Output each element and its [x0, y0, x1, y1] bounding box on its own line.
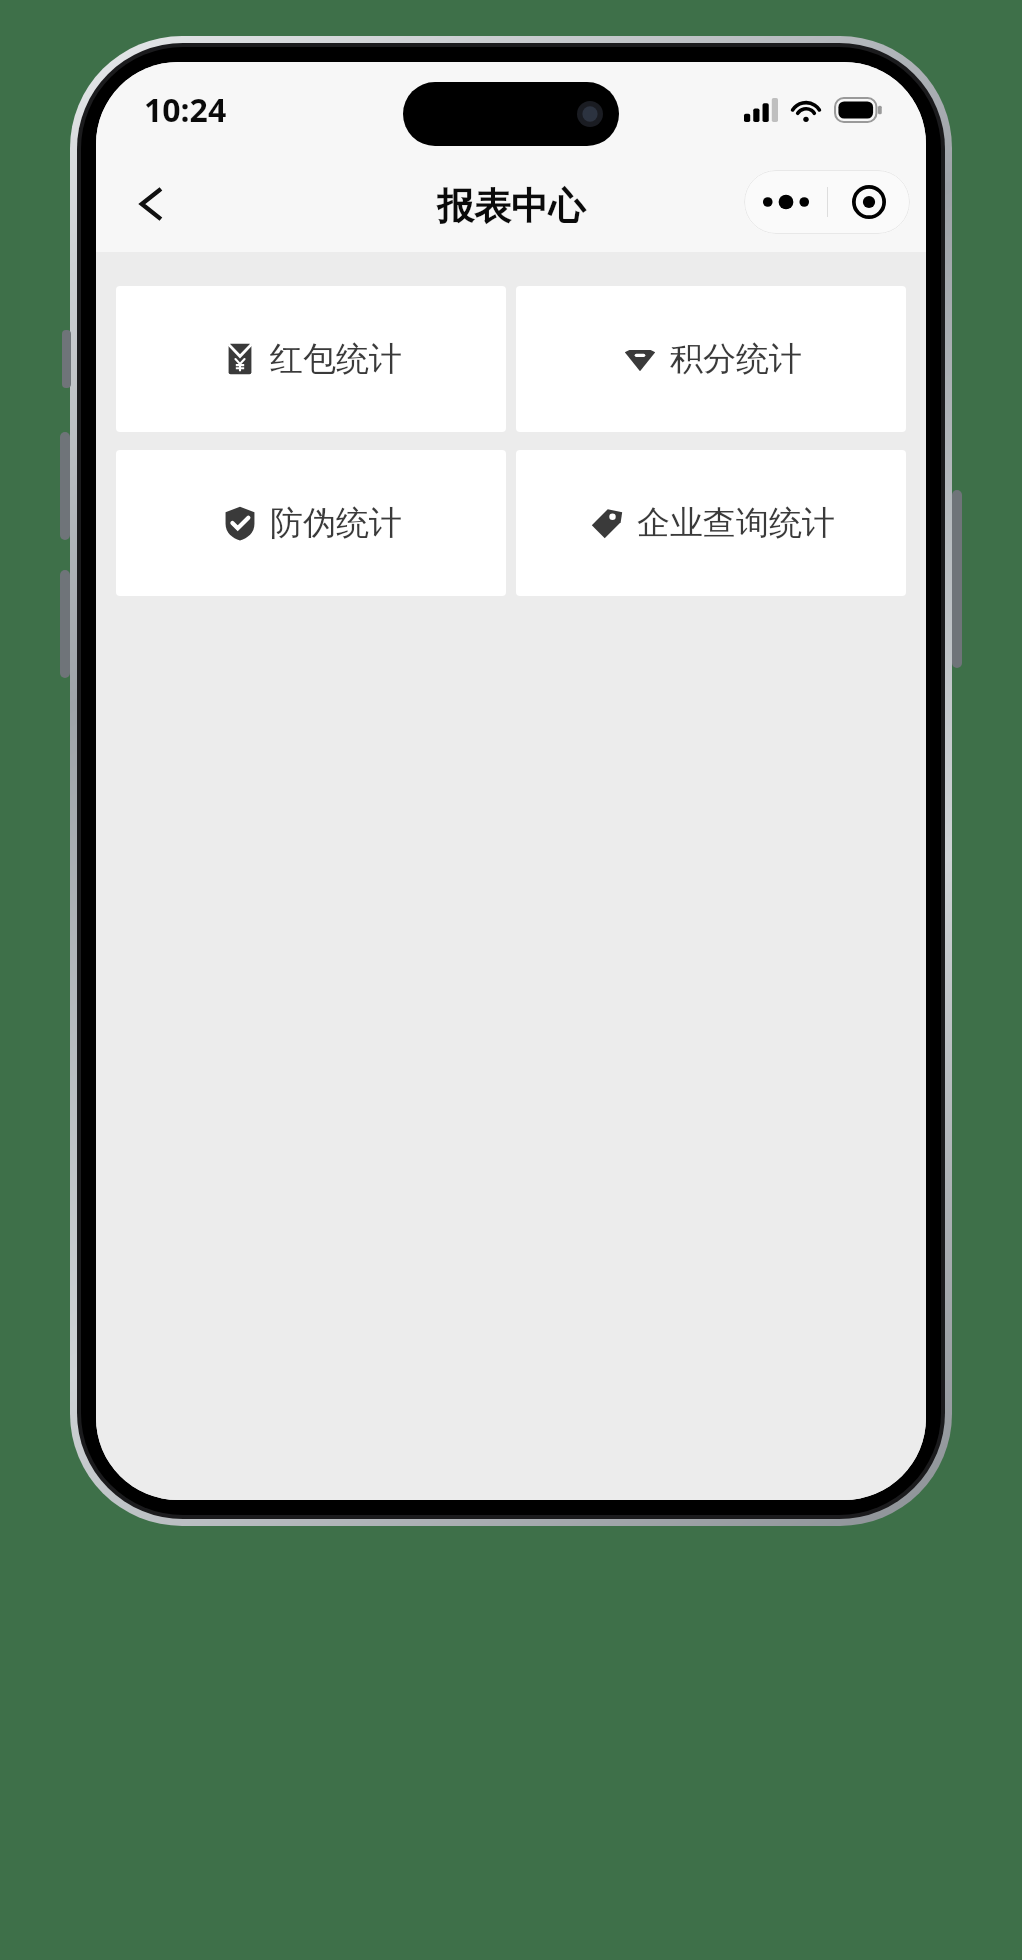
staticText: 红包统计 [270, 338, 402, 380]
staticText: 防伪统计 [270, 502, 402, 544]
staticText: 10:24 [144, 88, 227, 132]
button[interactable]: 防伪统计 [116, 450, 506, 596]
staticText: 积分统计 [670, 338, 802, 380]
button[interactable]: 积分统计 [516, 286, 906, 432]
staticText: 企业查询统计 [637, 502, 835, 544]
button[interactable]: 红包统计 [116, 286, 506, 432]
button[interactable]: 企业查询统计 [516, 450, 906, 596]
staticText: 报表中心 [437, 183, 585, 230]
button[interactable]: More [744, 170, 827, 234]
button[interactable]: Close mini program [827, 170, 910, 234]
button[interactable]: Back [116, 168, 188, 240]
